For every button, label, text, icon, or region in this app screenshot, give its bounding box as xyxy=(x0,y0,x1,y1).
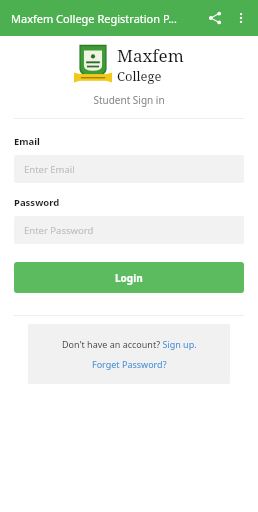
button[interactable]: Enter Password xyxy=(14,216,244,244)
button[interactable]: Forget Password? xyxy=(92,358,167,370)
staticText: Login xyxy=(115,271,143,285)
staticText: Don't have an account? Sign up. xyxy=(62,338,197,350)
staticText: College xyxy=(117,67,162,85)
staticText: Password xyxy=(14,196,60,209)
staticText: Forget Password? xyxy=(92,358,167,370)
button[interactable]: Enter Email xyxy=(14,155,244,183)
staticText: Enter Password xyxy=(24,224,94,237)
button[interactable]: Share xyxy=(202,5,228,31)
staticText: Enter Email xyxy=(24,163,75,176)
staticText: Maxfem College Registration P... xyxy=(11,11,177,26)
button[interactable]: Login xyxy=(14,262,244,293)
staticText: Maxfem xyxy=(117,44,184,67)
button[interactable]: Don't have an account? Sign up. xyxy=(62,338,197,350)
staticText: Student Sign in xyxy=(0,93,258,107)
button[interactable]: More options xyxy=(228,5,254,31)
staticText: Email xyxy=(14,135,40,148)
